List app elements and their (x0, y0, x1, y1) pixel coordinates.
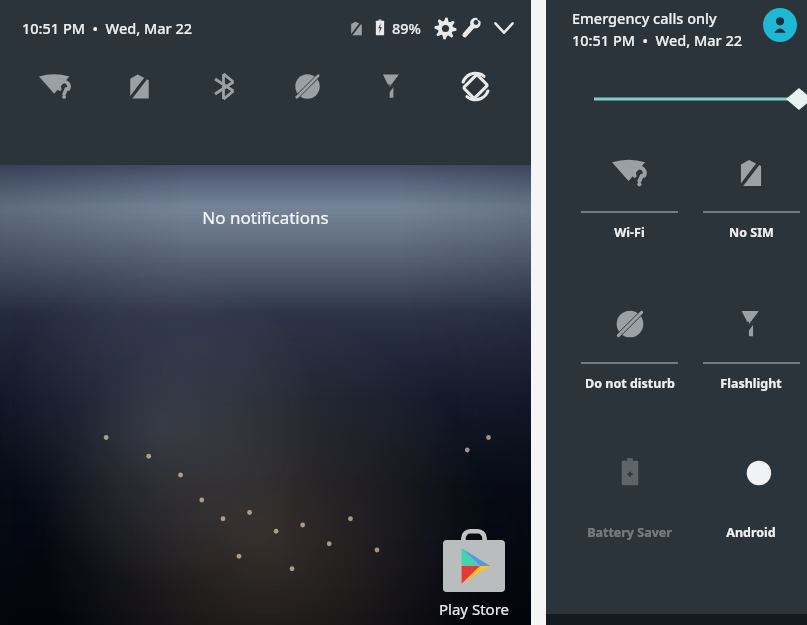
button[interactable]: Do not disturb (564, 292, 695, 437)
button[interactable]: Settings (431, 13, 459, 43)
button[interactable]: Developer options (459, 13, 483, 43)
staticText: 10:51 PM • Wed, Mar 22 (572, 30, 743, 50)
staticText: 89% (392, 18, 421, 38)
button[interactable]: Brightness (546, 85, 807, 113)
staticText: Do not disturb (585, 375, 675, 392)
staticText: Wi-Fi (614, 224, 645, 241)
button[interactable]: User (763, 8, 797, 42)
staticText: Android (726, 524, 776, 541)
staticText: Flashlight (720, 375, 782, 392)
staticText: Emergency calls only (572, 8, 717, 28)
button[interactable]: Bluetooth off (181, 55, 265, 117)
button[interactable]: Flashlight (695, 292, 807, 437)
button[interactable]: Expand (489, 13, 519, 43)
staticText: No notifications (202, 206, 329, 229)
button[interactable]: Play Store (439, 530, 509, 619)
button[interactable]: Battery Saver (564, 441, 695, 586)
button[interactable]: Flashlight (349, 55, 433, 117)
staticText: Play Store (439, 599, 509, 619)
staticText: No SIM (729, 224, 774, 241)
button[interactable]: Wi-Fi (14, 55, 97, 117)
staticText: Battery Saver (587, 524, 672, 541)
button[interactable]: Wi-Fi (564, 141, 695, 286)
button[interactable]: No SIM (695, 141, 807, 286)
button[interactable]: Do not disturb (265, 55, 349, 117)
staticText: 10:51 PM • Wed, Mar 22 (22, 18, 193, 38)
button[interactable]: Android (695, 441, 807, 586)
button[interactable]: Mobile data (97, 55, 181, 117)
button[interactable]: SIM status (343, 13, 369, 43)
button[interactable]: Auto-rotate (433, 55, 517, 117)
